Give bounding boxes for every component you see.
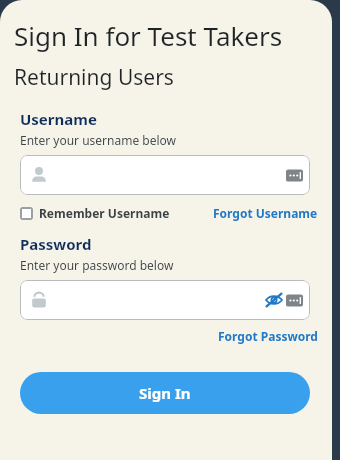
button[interactable]: Forgot Password [218,328,318,344]
staticText: Remember Username [39,205,170,221]
staticText: Password [20,234,92,254]
button[interactable]: Autofill [286,292,303,309]
button[interactable]: Forgot Username [213,205,318,221]
button[interactable]: Show password [264,290,284,310]
button[interactable]: Username input [20,155,310,195]
staticText: Sign In [139,383,191,403]
button[interactable]: Remember Username [20,203,170,223]
staticText: Username [20,109,97,129]
staticText: Enter your username below [20,132,176,148]
button[interactable]: Password input [20,280,310,320]
staticText: Forgot Password [218,328,318,344]
staticText: Forgot Username [213,205,318,221]
button[interactable]: Sign In [20,372,310,414]
staticText: Sign In for Test Takers [14,18,283,53]
button[interactable]: Autofill [286,167,303,184]
staticText: Enter your password below [20,257,174,273]
staticText: Returning Users [14,63,174,92]
